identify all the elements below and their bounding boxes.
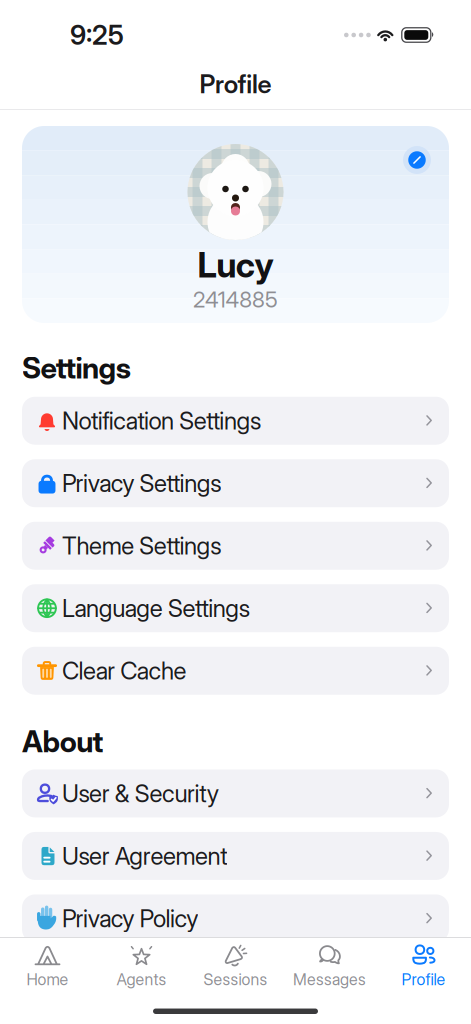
- button[interactable]: User & Security: [22, 769, 449, 817]
- staticText: Sessions: [203, 970, 267, 989]
- staticText: Settings: [22, 351, 131, 385]
- button[interactable]: Notification Settings: [22, 397, 449, 445]
- button[interactable]: Clear Cache: [22, 647, 449, 695]
- staticText: Language Settings: [62, 594, 250, 622]
- button[interactable]: Language Settings: [22, 584, 449, 632]
- staticText: 2414885: [193, 287, 278, 312]
- staticText: Clear Cache: [62, 657, 186, 684]
- staticText: Privacy Policy: [62, 905, 198, 932]
- staticText: Notification Settings: [62, 407, 261, 434]
- staticText: Home: [26, 970, 68, 989]
- button[interactable]: Home: [0, 941, 94, 991]
- staticText: 9:25: [70, 20, 124, 50]
- button[interactable]: Sessions: [188, 941, 282, 991]
- staticText: About: [22, 725, 104, 758]
- staticText: User Agreement: [62, 842, 227, 870]
- button[interactable]: Agents: [94, 941, 188, 991]
- staticText: Theme Settings: [62, 532, 221, 559]
- staticText: User & Security: [62, 780, 219, 807]
- staticText: Privacy Settings: [62, 469, 221, 497]
- staticText: Lucy: [198, 245, 273, 285]
- button[interactable]: Privacy Policy: [22, 894, 449, 942]
- staticText: Profile: [199, 69, 272, 98]
- staticText: Agents: [116, 970, 166, 989]
- button[interactable]: Privacy Settings: [22, 459, 449, 507]
- button[interactable]: Profile: [376, 941, 470, 991]
- staticText: Profile: [401, 970, 445, 989]
- button[interactable]: Edit Profile: [403, 146, 431, 174]
- button[interactable]: User Agreement: [22, 832, 449, 880]
- staticText: Messages: [293, 970, 366, 989]
- button[interactable]: Messages: [282, 941, 376, 991]
- button[interactable]: Theme Settings: [22, 522, 449, 570]
